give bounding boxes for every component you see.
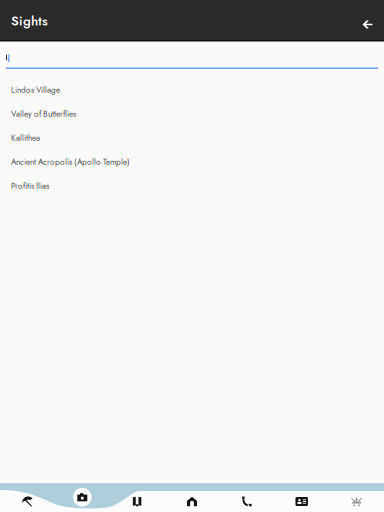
button[interactable]: Beaches	[0, 487, 54, 512]
button[interactable]: Back	[355, 9, 381, 33]
button[interactable]: Contacts	[275, 487, 329, 512]
staticText: Profitis Ilias	[11, 180, 49, 192]
button[interactable]: Search sights	[0, 41, 384, 69]
staticText: Ancient Acropolis (Apollo Temple)	[11, 156, 130, 168]
button[interactable]: Profitis Ilias	[0, 174, 384, 198]
button[interactable]: Valley of Butterflies	[0, 102, 384, 126]
button[interactable]: Lindos Village	[0, 78, 384, 102]
staticText: Valley of Butterflies	[11, 108, 76, 120]
button[interactable]: Home	[165, 487, 219, 512]
button[interactable]: Ancient Acropolis (Apollo Temple)	[0, 150, 384, 174]
button[interactable]: Guide	[110, 487, 164, 512]
button[interactable]: Camera	[55, 483, 109, 512]
staticText: Kallithea	[11, 132, 40, 144]
button[interactable]: Shop	[330, 487, 384, 512]
button[interactable]: Call	[220, 487, 274, 512]
button[interactable]: Kallithea	[0, 126, 384, 150]
staticText: Lindos Village	[11, 84, 60, 96]
staticText: Sights	[11, 12, 48, 30]
